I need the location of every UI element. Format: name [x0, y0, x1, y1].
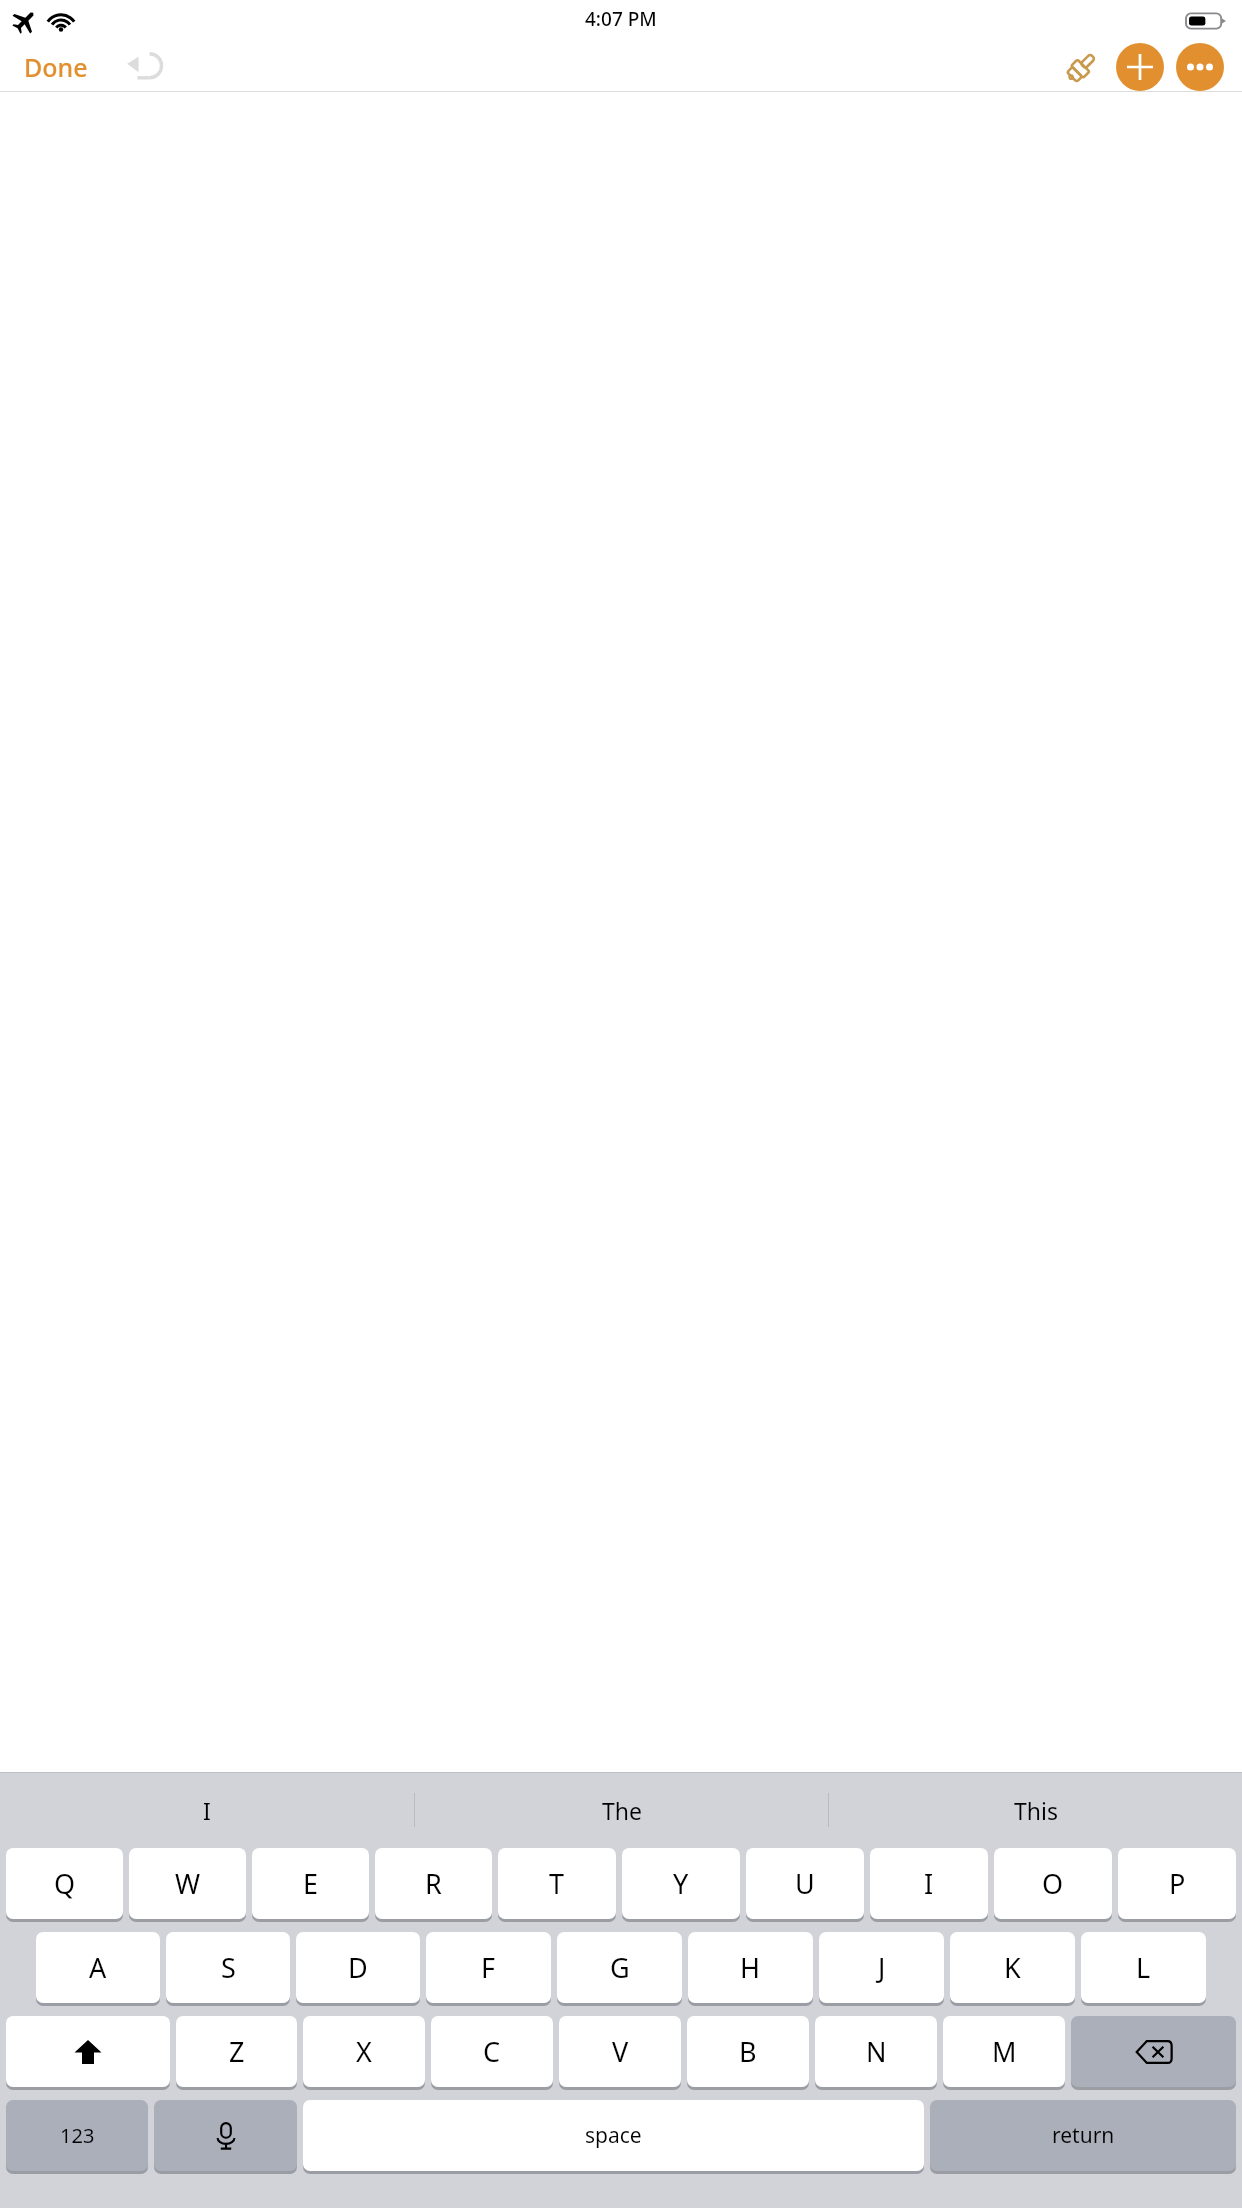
staticText: M [992, 2033, 1017, 2070]
staticText: Z [229, 2033, 245, 2070]
button[interactable]: Brush [1054, 42, 1110, 92]
button[interactable]: U [746, 1848, 864, 1919]
staticText: 4:07 PM [585, 6, 657, 32]
staticText: B [739, 2033, 757, 2070]
button[interactable]: More options [1176, 43, 1224, 91]
button[interactable]: Q [6, 1848, 123, 1919]
button[interactable]: I [0, 1772, 414, 1848]
button[interactable]: space [303, 2100, 924, 2171]
button[interactable]: L [1081, 1932, 1206, 2003]
button[interactable]: K [950, 1932, 1075, 2003]
staticText: X [356, 2033, 372, 2070]
button[interactable]: 123 [6, 2100, 148, 2171]
staticText: N [866, 2033, 887, 2070]
button[interactable]: The [415, 1772, 828, 1848]
button[interactable]: B [687, 2016, 809, 2087]
staticText: C [483, 2033, 501, 2070]
staticText: T [549, 1865, 565, 1902]
staticText: A [89, 1949, 107, 1986]
staticText: H [740, 1949, 761, 1986]
button[interactable]: D [296, 1932, 420, 2003]
staticText: D [348, 1949, 368, 1986]
button[interactable]: R [375, 1848, 492, 1919]
staticText: This [1014, 1795, 1058, 1826]
button[interactable]: Backspace [1071, 2016, 1236, 2087]
button[interactable]: I [870, 1848, 988, 1919]
button[interactable]: W [129, 1848, 246, 1919]
button[interactable]: E [252, 1848, 369, 1919]
button[interactable]: G [557, 1932, 682, 2003]
staticText: Q [54, 1865, 76, 1902]
staticText: K [1004, 1949, 1021, 1986]
staticText: Y [673, 1865, 689, 1902]
button[interactable]: A [36, 1932, 160, 2003]
staticText: The [602, 1795, 642, 1826]
button[interactable]: return [930, 2100, 1236, 2171]
staticText: F [481, 1949, 496, 1986]
button[interactable]: Done [16, 46, 96, 88]
staticText: P [1169, 1865, 1186, 1902]
button[interactable]: J [819, 1932, 944, 2003]
button[interactable]: H [688, 1932, 813, 2003]
staticText: J [878, 1949, 886, 1986]
button[interactable]: This [829, 1772, 1242, 1848]
button[interactable]: P [1118, 1848, 1236, 1919]
staticText: W [175, 1865, 201, 1902]
button[interactable]: F [426, 1932, 551, 2003]
staticText: I [203, 1795, 211, 1826]
button[interactable]: Shift [6, 2016, 170, 2087]
staticText: 123 [60, 2122, 95, 2149]
button[interactable]: M [943, 2016, 1065, 2087]
button[interactable]: Undo [118, 42, 172, 92]
button[interactable]: N [815, 2016, 937, 2087]
staticText: Done [24, 50, 88, 84]
button[interactable]: S [166, 1932, 290, 2003]
staticText: return [1052, 2121, 1115, 2150]
staticText: R [425, 1865, 442, 1902]
button[interactable]: Add [1116, 43, 1164, 91]
staticText: O [1042, 1865, 1064, 1902]
staticText: V [612, 2033, 629, 2070]
button[interactable]: Dictate [154, 2100, 297, 2171]
staticText: S [221, 1949, 236, 1986]
staticText: U [795, 1865, 815, 1902]
staticText: space [585, 2121, 642, 2150]
staticText: I [924, 1865, 934, 1902]
button[interactable]: O [994, 1848, 1112, 1919]
button[interactable]: Y [622, 1848, 740, 1919]
button[interactable]: C [431, 2016, 553, 2087]
button[interactable]: X [303, 2016, 425, 2087]
button[interactable]: T [498, 1848, 616, 1919]
staticText: E [303, 1865, 319, 1902]
staticText: L [1136, 1949, 1151, 1986]
staticText: G [610, 1949, 630, 1986]
button[interactable]: V [559, 2016, 681, 2087]
button[interactable]: Z [176, 2016, 297, 2087]
